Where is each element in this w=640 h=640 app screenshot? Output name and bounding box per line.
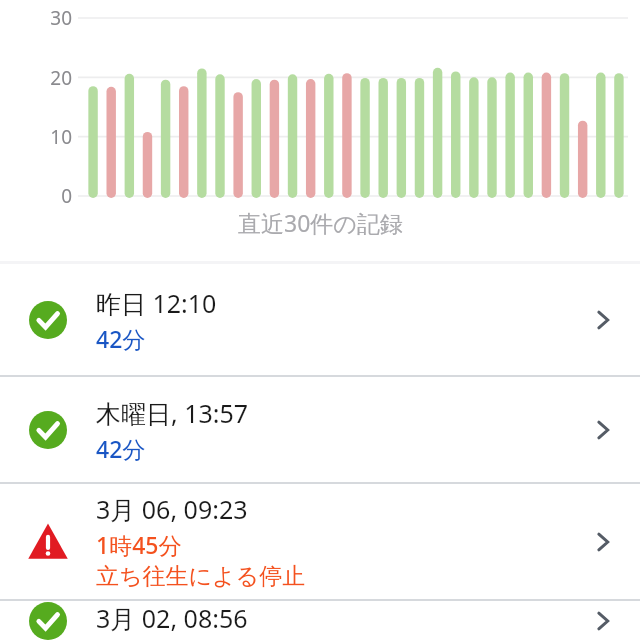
staticText: 30 bbox=[0, 5, 72, 31]
other: 詳細を開く bbox=[590, 529, 616, 555]
staticText: 立ち往生による停止 bbox=[96, 562, 306, 591]
staticText: 10 bbox=[0, 124, 72, 150]
staticText: 20 bbox=[0, 65, 72, 91]
other: 詳細を開く bbox=[590, 608, 616, 634]
staticText: 昨日 12:10 bbox=[96, 286, 217, 320]
staticText: 直近30件の記録 bbox=[238, 207, 403, 238]
staticText: 木曜日, 13:57 bbox=[96, 396, 249, 430]
button[interactable]: 昨日 12:10 bbox=[0, 264, 640, 375]
staticText: 42分 bbox=[96, 323, 146, 354]
staticText: 3月 06, 09:23 bbox=[96, 492, 248, 526]
button[interactable]: 3月 06, 09:23 bbox=[0, 484, 640, 599]
staticText: 42分 bbox=[96, 433, 146, 464]
other: 詳細を開く bbox=[590, 417, 616, 443]
button[interactable]: 3月 02, 08:56 bbox=[0, 601, 640, 640]
staticText: 1時45分 bbox=[96, 529, 182, 560]
button[interactable]: 木曜日, 13:57 bbox=[0, 377, 640, 482]
staticText: 0 bbox=[0, 183, 72, 209]
other: 詳細を開く bbox=[590, 307, 616, 333]
staticText: 3月 02, 08:56 bbox=[96, 601, 248, 635]
